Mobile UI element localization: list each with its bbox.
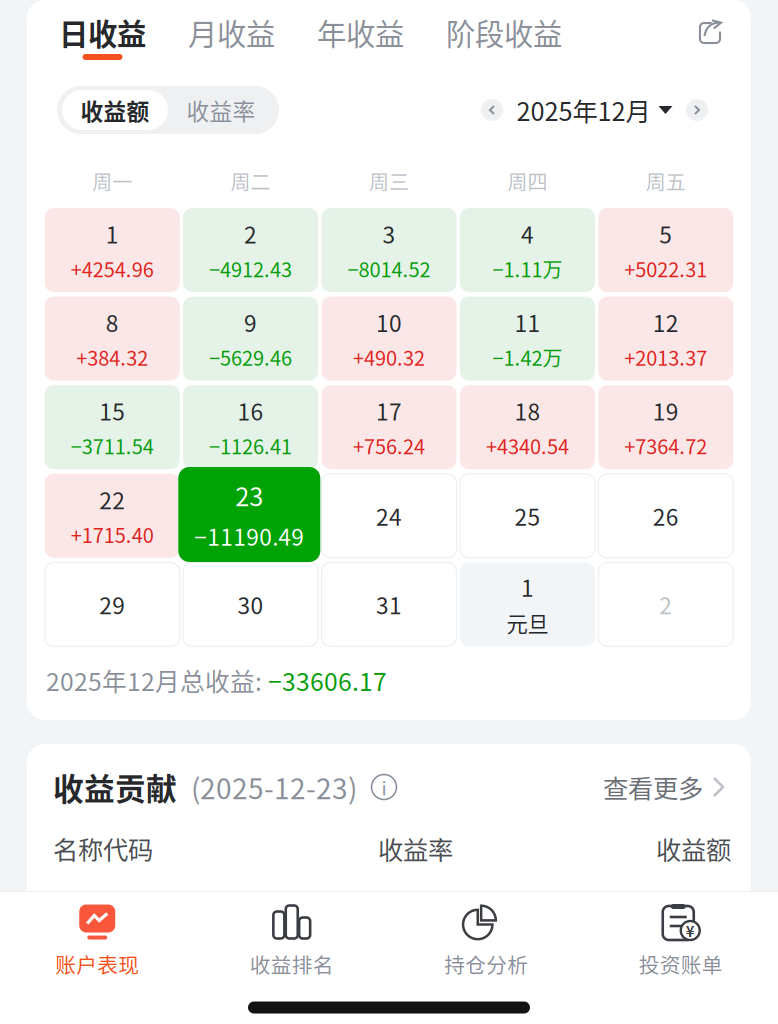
staticText: 1 [106, 217, 119, 250]
staticText: 日收益 [59, 11, 146, 53]
staticText: 阶段收益 [446, 11, 562, 53]
button[interactable]: 23 [183, 474, 318, 558]
staticText: 周五 [646, 166, 686, 195]
staticText: 22 [99, 483, 125, 516]
staticText: 持仓分析 [444, 949, 528, 979]
staticText: −8014.52 [347, 254, 430, 283]
button[interactable]: 4 [460, 208, 595, 292]
button[interactable]: 3 [321, 208, 456, 292]
button[interactable]: 收益率 [168, 90, 274, 130]
staticText: +4340.54 [486, 431, 569, 460]
staticText: +2013.37 [624, 342, 707, 371]
button[interactable]: 2 [598, 562, 733, 646]
button[interactable]: 2 [183, 208, 318, 292]
staticText: 4 [521, 217, 534, 250]
staticText: 8 [106, 306, 119, 338]
staticText: 15 [99, 394, 125, 427]
staticText: −3711.54 [71, 431, 154, 460]
button[interactable]: 查看更多 [603, 769, 725, 805]
staticText: i [381, 773, 386, 800]
button[interactable]: 日收益 [38, 0, 167, 66]
staticText: 名称代码 [53, 830, 153, 867]
button[interactable]: 月收益 [167, 0, 296, 66]
button[interactable]: 9 [183, 297, 318, 381]
button[interactable]: 15 [45, 385, 180, 469]
staticText: 24 [376, 499, 402, 532]
staticText: +7364.72 [624, 431, 707, 460]
button[interactable]: 1 [460, 562, 595, 646]
staticText: 元旦 [506, 607, 548, 638]
button[interactable]: 账户表现 [0, 892, 194, 991]
button[interactable]: 5 [598, 208, 733, 292]
staticText: 3 [382, 217, 395, 250]
staticText: ¥ [686, 920, 695, 941]
button[interactable]: 1 [45, 208, 180, 292]
staticText: 2025年12月 [516, 92, 650, 128]
button[interactable]: 31 [321, 562, 456, 646]
staticText: +5022.31 [624, 254, 707, 283]
staticText: 23 [235, 477, 263, 513]
button[interactable]: 阶段收益 [425, 0, 583, 66]
button[interactable]: 29 [45, 562, 180, 646]
button[interactable]: 年收益 [296, 0, 425, 66]
staticText: 29 [99, 588, 125, 621]
staticText: 月收益 [188, 11, 275, 53]
button[interactable]: 22 [45, 474, 180, 558]
button[interactable]: 18 [460, 385, 595, 469]
staticText: 2 [244, 217, 257, 250]
button[interactable]: 16 [183, 385, 318, 469]
staticText: 周二 [231, 166, 271, 195]
staticText: 年收益 [317, 11, 404, 53]
staticText: 1 [521, 570, 534, 603]
staticText: −33606.17 [268, 662, 387, 698]
button[interactable]: Previous month [481, 99, 503, 121]
staticText: −4912.43 [209, 254, 292, 283]
staticText: +384.32 [76, 342, 148, 371]
staticText: 收益贡献 [53, 765, 177, 809]
button[interactable]: 8 [45, 297, 180, 381]
staticText: 5 [659, 217, 672, 250]
staticText: 2025年12月总收益: [46, 662, 268, 698]
staticText: 26 [653, 499, 679, 532]
button[interactable]: 收益额 [62, 90, 168, 130]
button[interactable]: 10 [321, 297, 456, 381]
button[interactable]: 30 [183, 562, 318, 646]
staticText: 18 [514, 394, 540, 427]
staticText: 31 [376, 588, 402, 621]
button[interactable]: Share [684, 7, 736, 59]
button[interactable]: 收益排名 [194, 892, 389, 991]
staticText: 12 [653, 306, 679, 338]
staticText: 17 [376, 394, 402, 427]
button[interactable]: 11 [460, 297, 595, 381]
staticText: 周一 [92, 166, 132, 195]
staticText: −5629.46 [209, 342, 292, 371]
button[interactable]: 24 [321, 474, 456, 558]
staticText: +1715.40 [71, 520, 154, 549]
staticText: 25 [514, 499, 540, 532]
button[interactable]: 19 [598, 385, 733, 469]
staticText: 9 [244, 306, 257, 338]
button[interactable]: 12 [598, 297, 733, 381]
staticText: −11190.49 [194, 519, 304, 552]
staticText: 账户表现 [55, 949, 139, 979]
button[interactable]: 25 [460, 474, 595, 558]
button[interactable]: 2025年12月 [516, 92, 672, 128]
staticText: 收益率 [378, 830, 453, 867]
button[interactable]: 26 [598, 474, 733, 558]
button[interactable]: ¥ [583, 892, 778, 991]
button[interactable]: 23 [178, 467, 320, 562]
button[interactable]: 持仓分析 [389, 892, 583, 991]
button[interactable]: Next month [686, 99, 708, 121]
staticText: 16 [238, 394, 264, 427]
staticText: 11 [514, 306, 540, 338]
staticText: (2025-12-23) [191, 767, 357, 807]
staticText: +490.32 [353, 342, 425, 371]
staticText: 收益额 [80, 94, 149, 126]
button[interactable]: 17 [321, 385, 456, 469]
button[interactable]: Info [371, 774, 397, 800]
staticText: 收益排名 [250, 949, 334, 979]
staticText: 30 [238, 588, 264, 621]
staticText: +4254.96 [71, 254, 154, 283]
staticText: 周三 [369, 166, 409, 195]
staticText: +756.24 [353, 431, 425, 460]
